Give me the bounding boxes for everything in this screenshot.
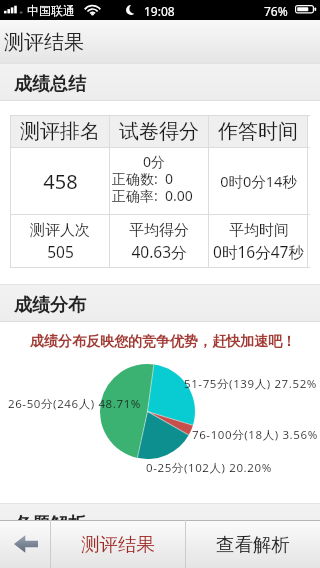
staticText: 正确率: 0.00 (112, 186, 193, 205)
staticText: 查看解析 (216, 533, 290, 556)
staticText: 0分 (143, 152, 166, 171)
button[interactable]: 测评结果 (51, 520, 185, 568)
button[interactable]: 查看解析 (186, 520, 320, 568)
staticText: 0时0分14秒 (220, 171, 297, 191)
staticText: 40.63分 (131, 241, 187, 262)
staticText: 测评结果 (4, 30, 84, 55)
staticText: 平均时间 (229, 221, 289, 240)
staticText: 试卷得分 (119, 119, 199, 144)
staticText: 正确数: 0 (112, 169, 174, 188)
staticText: 成绩分布 (14, 294, 86, 317)
staticText: 作答时间 (218, 119, 298, 144)
staticText: 成绩分布反映您的竞争优势，赶快加速吧！ (30, 333, 296, 351)
staticText: 51-75分(139人) 27.52% (184, 376, 317, 392)
staticText: 成绩总结 (14, 73, 86, 96)
staticText: 测评排名 (20, 119, 100, 144)
staticText: 0时16分47秒 (213, 241, 304, 262)
staticText: 测评人次 (30, 221, 90, 240)
button[interactable]: Back (0, 520, 50, 568)
staticText: 19:08 (144, 3, 175, 19)
staticText: 505 (47, 241, 74, 262)
staticText: 458 (43, 168, 78, 195)
staticText: 中国联通 (27, 3, 75, 18)
staticText: 0-25分(102人) 20.20% (146, 460, 272, 476)
staticText: 76-100分(18人) 3.56% (192, 427, 318, 443)
staticText: 26-50分(246人) 48.71% (8, 396, 141, 412)
staticText: 76% (264, 3, 288, 19)
staticText: 各题解析 (14, 513, 86, 536)
staticText: 测评结果 (81, 533, 155, 556)
staticText: 平均得分 (129, 221, 189, 240)
